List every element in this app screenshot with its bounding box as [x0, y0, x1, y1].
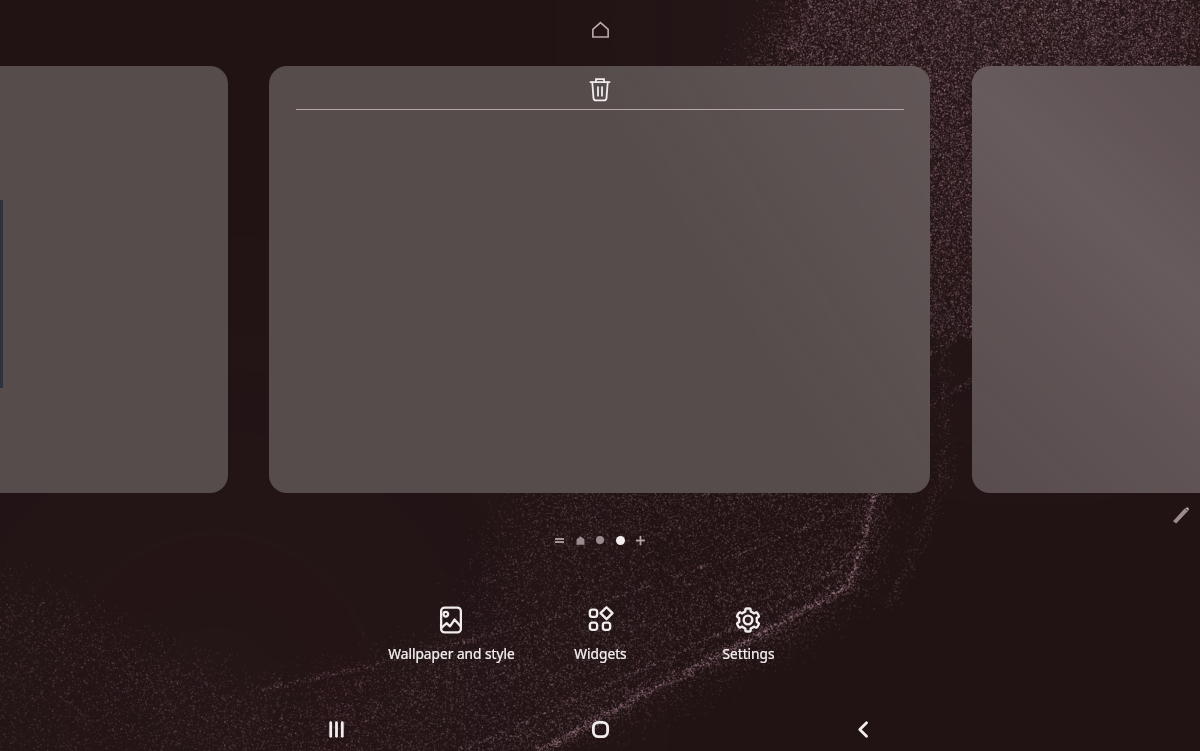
button[interactable]: Home	[576, 705, 624, 751]
button[interactable]: Page 3 selected	[608, 528, 632, 552]
staticText: Widgets	[574, 644, 627, 663]
button[interactable]: Add page	[628, 528, 652, 552]
button[interactable]	[0, 66, 228, 493]
button[interactable]: Remove page	[590, 77, 610, 101]
button[interactable]: Wallpaper and style	[361, 600, 541, 663]
button[interactable]: Recent apps	[312, 705, 360, 751]
button[interactable]: Page settings	[547, 528, 571, 552]
button[interactable]: Page 2	[588, 528, 612, 552]
button[interactable]: Back	[839, 705, 887, 751]
button[interactable]: Widgets	[510, 600, 690, 663]
button[interactable]: Home page	[568, 528, 592, 552]
staticText: Settings	[722, 644, 775, 663]
button[interactable]: Edit	[1166, 499, 1196, 529]
button[interactable]: Home screen settings	[584, 14, 616, 46]
staticText: Wallpaper and style	[388, 644, 515, 663]
button[interactable]	[972, 66, 1200, 493]
button[interactable]: Remove page	[269, 66, 930, 493]
button[interactable]: Settings	[658, 600, 838, 663]
